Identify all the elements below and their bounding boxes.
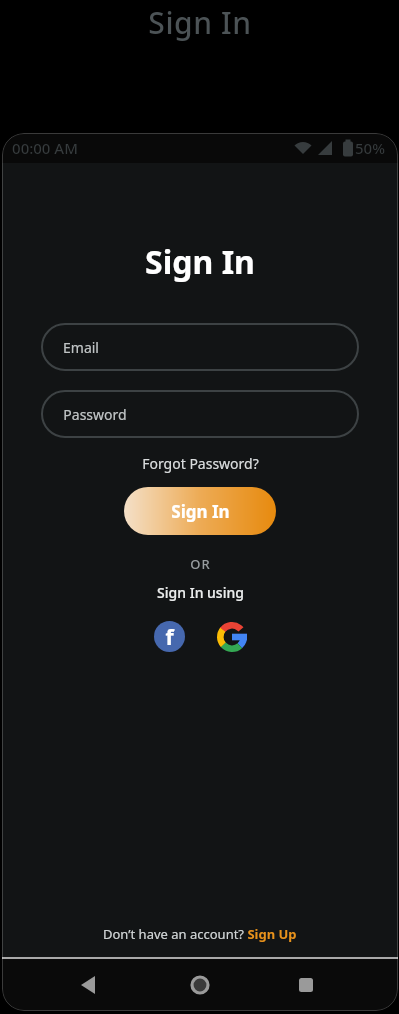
staticText: 00:00 AM bbox=[12, 138, 78, 158]
button[interactable] bbox=[292, 971, 320, 999]
button[interactable]: Password bbox=[41, 390, 359, 438]
button[interactable] bbox=[74, 971, 102, 999]
button[interactable] bbox=[186, 971, 214, 999]
button[interactable]: Sign In bbox=[124, 487, 276, 535]
staticText: 50% bbox=[355, 138, 385, 158]
button[interactable]: f bbox=[154, 621, 185, 652]
staticText: Sign In bbox=[148, 2, 252, 43]
staticText: OR bbox=[190, 555, 211, 573]
button[interactable]: Email bbox=[41, 323, 359, 371]
staticText: f bbox=[165, 623, 174, 652]
staticText: Don’t have an account? Sign Up bbox=[103, 925, 297, 943]
staticText: Sign In using bbox=[157, 583, 244, 602]
staticText: Forgot Password? bbox=[142, 454, 259, 473]
staticText: Email bbox=[63, 338, 99, 357]
button[interactable] bbox=[216, 621, 247, 652]
staticText: Sign In bbox=[171, 500, 230, 523]
button[interactable]: Don’t have an account? Sign Up bbox=[103, 925, 297, 943]
staticText: Sign In bbox=[145, 240, 255, 284]
staticText: Password bbox=[63, 405, 127, 424]
button[interactable]: Forgot Password? bbox=[138, 450, 263, 477]
